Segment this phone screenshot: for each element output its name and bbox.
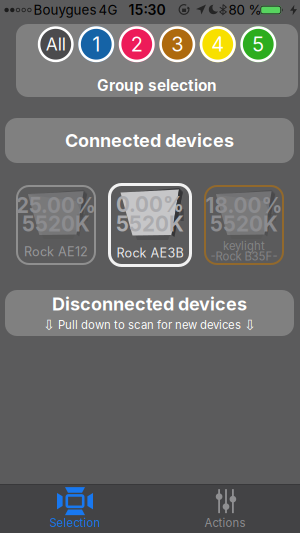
staticText: 1 xyxy=(92,32,100,56)
button[interactable]: Selection xyxy=(0,484,150,533)
staticText: Selection xyxy=(49,516,100,530)
staticText: ⇩ xyxy=(43,317,55,333)
button[interactable]: 4 xyxy=(200,26,236,62)
staticText: 80 % xyxy=(228,2,261,18)
button[interactable]: All xyxy=(38,26,74,62)
staticText: -Rock B35F- xyxy=(210,250,277,263)
staticText: 25.00% xyxy=(16,193,96,218)
staticText: Rock AE3B xyxy=(116,245,183,261)
staticText: Bouygues xyxy=(33,2,96,18)
staticText: 5 xyxy=(252,32,264,56)
staticText: 5520K xyxy=(22,211,90,236)
staticText: All xyxy=(46,34,66,55)
button[interactable]: 5 xyxy=(240,26,276,62)
button[interactable]: 1 xyxy=(78,26,114,62)
staticText: Pull down to scan for new devices xyxy=(58,318,241,332)
button[interactable]: 25.00% xyxy=(16,185,96,265)
staticText: Group selection xyxy=(97,76,217,95)
button[interactable]: 3 xyxy=(159,26,195,62)
staticText: 3 xyxy=(171,32,183,56)
staticText: ⇩ xyxy=(244,317,256,333)
staticText: Actions xyxy=(204,516,245,530)
staticText: 15:30 xyxy=(128,1,165,18)
staticText: Connected devices xyxy=(65,130,234,151)
staticText: 5520K xyxy=(116,211,184,236)
staticText: 18.00% xyxy=(205,193,282,218)
staticText: keylight xyxy=(223,239,265,253)
button[interactable]: 0.00% xyxy=(108,183,192,267)
staticText: 5520K xyxy=(210,211,278,236)
button[interactable]: 18.00% xyxy=(204,185,284,265)
staticText: Rock AE12 xyxy=(24,244,88,259)
staticText: 2 xyxy=(131,32,143,56)
staticText: 0.00% xyxy=(116,192,184,217)
staticText: 4 xyxy=(211,32,224,56)
staticText: Disconnected devices xyxy=(52,293,247,315)
button[interactable]: 2 xyxy=(119,26,155,62)
button[interactable]: Actions xyxy=(150,484,300,533)
staticText: 4G xyxy=(98,2,117,18)
